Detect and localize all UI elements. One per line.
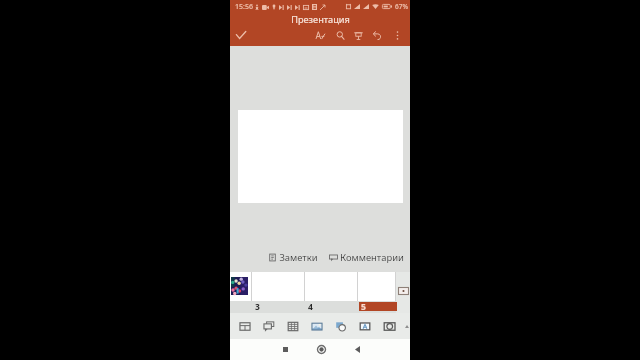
button[interactable]: Home: [309, 339, 333, 360]
button[interactable]: Picture: [305, 313, 329, 339]
button[interactable]: More options: [387, 24, 407, 46]
button[interactable]: Undo: [367, 24, 387, 46]
button[interactable]: Заметки: [268, 250, 319, 265]
button[interactable]: Recent apps: [273, 339, 297, 360]
button[interactable]: Comment: [257, 313, 281, 339]
button[interactable]: 3: [252, 272, 305, 313]
button[interactable]: Media: [377, 313, 401, 339]
staticText: Комментарии: [340, 251, 404, 264]
button[interactable]: Expand toolbar: [401, 313, 413, 339]
button[interactable]: Комментарии: [328, 250, 405, 265]
staticText: 67%: [395, 2, 408, 11]
button[interactable]: [230, 272, 252, 313]
staticText: 5: [361, 301, 366, 313]
button[interactable]: Done: [230, 24, 252, 46]
button[interactable]: 4: [305, 272, 358, 313]
button[interactable]: Layout: [233, 313, 257, 339]
button[interactable]: Shapes: [329, 313, 353, 339]
button[interactable]: New slide: [398, 287, 409, 295]
button[interactable]: 5: [358, 272, 396, 313]
staticText: Презентация: [291, 13, 350, 26]
staticText: 3: [255, 301, 260, 313]
button[interactable]: Present: [348, 24, 368, 46]
button[interactable]: Table: [281, 313, 305, 339]
staticText: 15:56: [235, 2, 253, 12]
staticText: Заметки: [279, 251, 318, 264]
staticText: 4: [308, 301, 313, 313]
button[interactable]: Format text: [310, 24, 330, 46]
button[interactable]: Search: [330, 24, 350, 46]
button[interactable]: Back: [345, 339, 369, 360]
button[interactable]: Text box: [353, 313, 377, 339]
